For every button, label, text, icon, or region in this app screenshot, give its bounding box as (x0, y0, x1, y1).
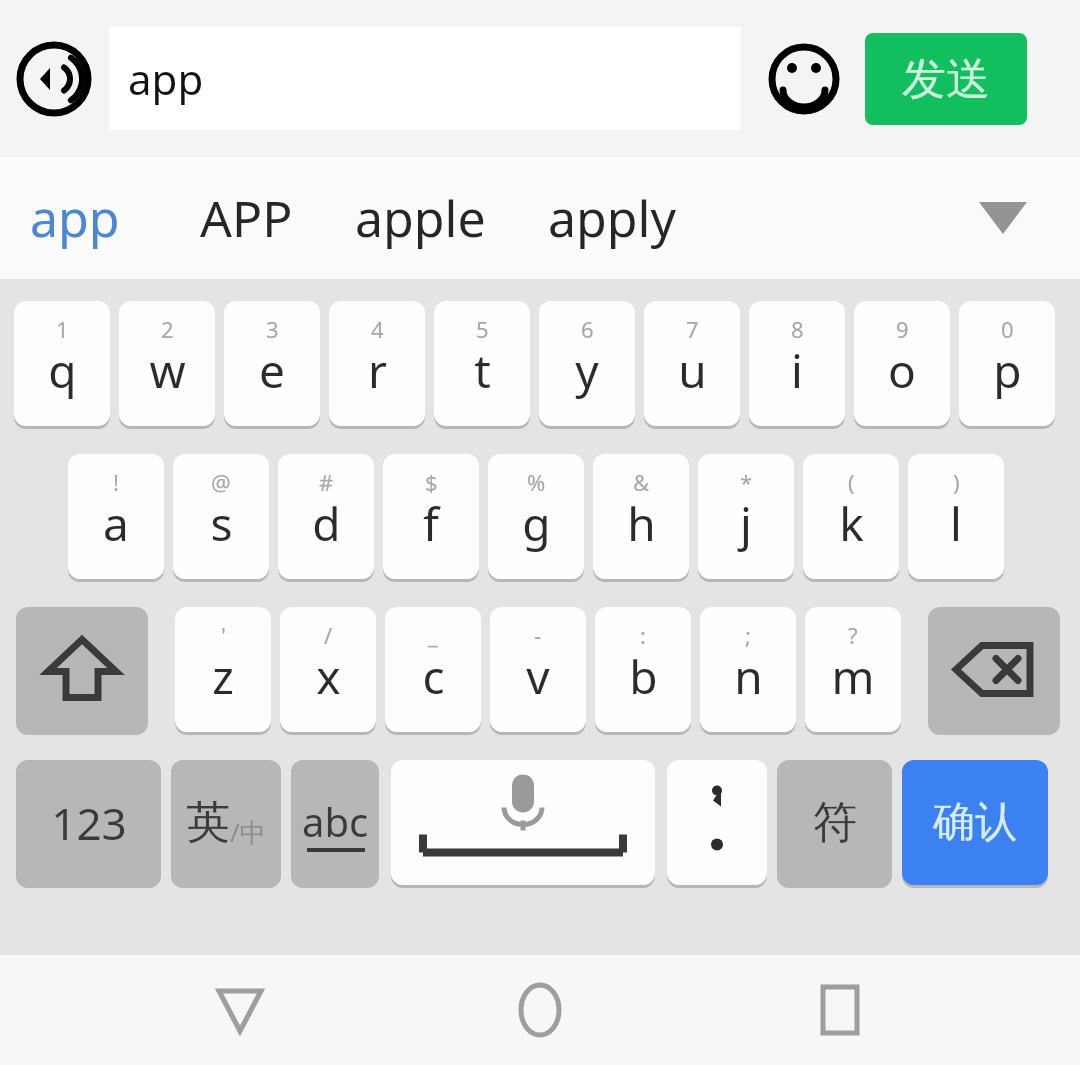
staticText: * (740, 467, 753, 497)
button[interactable]: Shift (16, 607, 148, 732)
button[interactable]: 6 (539, 301, 635, 426)
staticText: 发送 (902, 52, 990, 107)
staticText: c (422, 645, 445, 708)
staticText: ; (745, 620, 751, 650)
button[interactable]: Comma period (667, 760, 767, 885)
button[interactable]: ) (908, 454, 1004, 579)
staticText: apple (355, 184, 486, 252)
button[interactable]: app (109, 27, 741, 130)
button[interactable]: / (280, 607, 376, 732)
staticText: h (627, 492, 656, 555)
button[interactable]: apple (355, 157, 486, 279)
staticText: 符 (813, 795, 857, 850)
button[interactable]: Voice input (14, 39, 94, 119)
button[interactable]: $ (383, 454, 479, 579)
button[interactable]: # (278, 454, 374, 579)
staticText: APP (200, 184, 293, 252)
staticText: 123 (51, 793, 127, 853)
staticText: t (474, 339, 491, 402)
staticText: 7 (686, 314, 699, 344)
button[interactable]: abc (291, 760, 379, 885)
button[interactable]: % (488, 454, 584, 579)
staticText: b (629, 645, 658, 708)
button[interactable]: 1 (14, 301, 110, 426)
staticText: ( (848, 467, 855, 497)
staticText: k (839, 492, 864, 555)
button[interactable]: 9 (854, 301, 950, 426)
button[interactable]: 0 (959, 301, 1055, 426)
staticText: y (575, 339, 599, 402)
staticText: p (993, 339, 1022, 402)
button[interactable]: APP (200, 157, 293, 279)
staticText: a (103, 492, 129, 555)
button[interactable]: 2 (119, 301, 215, 426)
button[interactable]: Back (180, 955, 300, 1065)
staticText: d (312, 492, 341, 555)
button[interactable]: 123 (16, 760, 161, 885)
button[interactable]: Backspace (928, 607, 1060, 732)
staticText: 9 (896, 314, 909, 344)
button[interactable]: ( (803, 454, 899, 579)
button[interactable]: ? (805, 607, 901, 732)
staticText: 确认 (933, 796, 1017, 849)
staticText: o (888, 339, 916, 402)
staticText: r (368, 339, 387, 402)
staticText: q (48, 339, 77, 402)
button[interactable]: @ (173, 454, 269, 579)
staticText: w (149, 339, 186, 402)
button[interactable]: : (595, 607, 691, 732)
button[interactable]: 3 (224, 301, 320, 426)
staticText: s (210, 492, 233, 555)
staticText: - (534, 620, 542, 650)
staticText: /中 (230, 814, 266, 850)
button[interactable]: ! (68, 454, 164, 579)
button[interactable]: ; (700, 607, 796, 732)
button[interactable]: Space (391, 760, 655, 885)
staticText: # (319, 467, 334, 497)
staticText: 2 (161, 314, 174, 344)
staticText: m (831, 645, 875, 708)
button[interactable]: Recents (780, 955, 900, 1065)
button[interactable]: apply (548, 157, 676, 279)
staticText: % (527, 467, 546, 497)
button[interactable]: Emoji (765, 40, 843, 118)
staticText: _ (428, 620, 438, 650)
staticText: l (950, 492, 962, 555)
button[interactable]: 符 (777, 760, 892, 885)
button[interactable]: _ (385, 607, 481, 732)
staticText: 1 (56, 314, 69, 344)
staticText: ' (221, 620, 226, 650)
staticText: : (640, 620, 646, 650)
button[interactable]: 英 (171, 760, 281, 885)
staticText: 4 (371, 314, 384, 344)
staticText: app (128, 50, 204, 107)
staticText: 英 (186, 795, 230, 850)
button[interactable]: 5 (434, 301, 530, 426)
staticText: abc (302, 794, 369, 848)
staticText: g (522, 492, 551, 555)
button[interactable]: * (698, 454, 794, 579)
staticText: 8 (791, 314, 804, 344)
button[interactable]: 确认 (902, 760, 1048, 885)
button[interactable]: 7 (644, 301, 740, 426)
button[interactable]: & (593, 454, 689, 579)
staticText: z (212, 645, 234, 708)
staticText: @ (211, 467, 231, 497)
staticText: / (324, 620, 333, 650)
button[interactable]: Home (480, 955, 600, 1065)
staticText: e (259, 339, 285, 402)
staticText: i (791, 339, 803, 402)
button[interactable]: 4 (329, 301, 425, 426)
staticText: f (423, 492, 439, 555)
button[interactable]: Expand suggestions (948, 157, 1058, 279)
button[interactable]: 发送 (865, 33, 1027, 125)
button[interactable]: app (30, 157, 120, 279)
button[interactable]: 8 (749, 301, 845, 426)
staticText: ! (113, 467, 119, 497)
staticText: 0 (1001, 314, 1014, 344)
staticText: 3 (266, 314, 279, 344)
button[interactable]: ' (175, 607, 271, 732)
staticText: ? (848, 620, 858, 650)
button[interactable]: - (490, 607, 586, 732)
staticText: x (316, 645, 341, 708)
